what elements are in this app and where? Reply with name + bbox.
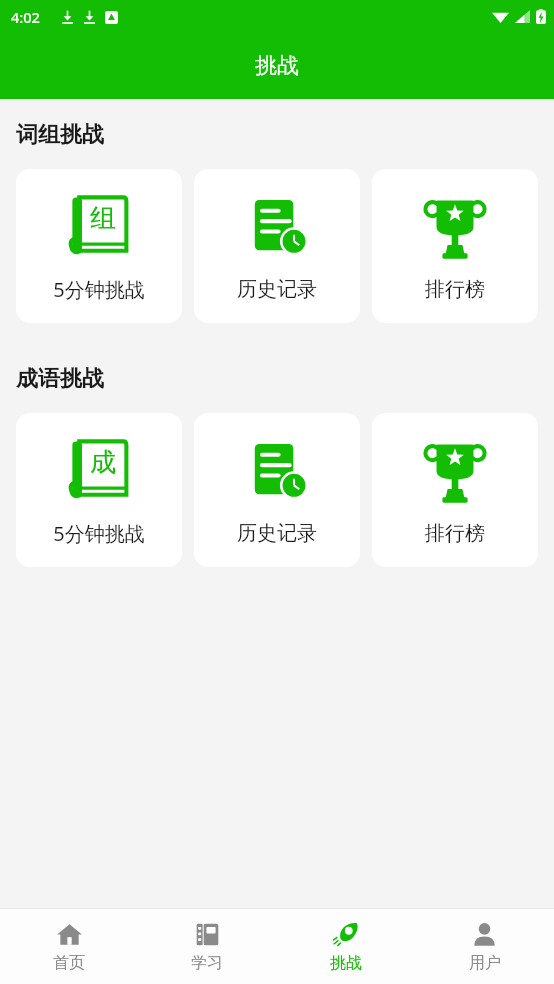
- staticText: 词组挑战: [16, 121, 104, 149]
- button[interactable]: 学习: [138, 909, 276, 984]
- staticText: 排行榜: [425, 521, 485, 546]
- button[interactable]: 历史记录: [194, 169, 360, 323]
- button[interactable]: 用户: [415, 909, 554, 984]
- button[interactable]: 首页: [0, 909, 138, 984]
- staticText: 挑战: [255, 52, 299, 80]
- other: 首页: [56, 921, 83, 948]
- other: 用户: [471, 921, 498, 948]
- button[interactable]: 历史记录: [194, 413, 360, 567]
- staticText: 排行榜: [425, 277, 485, 302]
- staticText: 历史记录: [237, 521, 317, 546]
- staticText: 4:02: [11, 7, 40, 27]
- staticText: 成语挑战: [16, 365, 104, 393]
- button[interactable]: 成: [16, 413, 182, 567]
- staticText: 组: [90, 202, 116, 235]
- other: 挑战: [332, 921, 359, 948]
- staticText: 挑战: [330, 953, 362, 973]
- staticText: 首页: [53, 953, 85, 973]
- staticText: 5分钟挑战: [53, 520, 145, 547]
- button[interactable]: 组: [16, 169, 182, 323]
- button[interactable]: 挑战: [276, 909, 415, 984]
- button[interactable]: 排行榜: [372, 169, 538, 323]
- staticText: 5分钟挑战: [53, 276, 145, 303]
- button[interactable]: 排行榜: [372, 413, 538, 567]
- staticText: 用户: [469, 953, 501, 973]
- staticText: 学习: [191, 953, 223, 973]
- staticText: 成: [90, 446, 116, 479]
- other: 学习: [194, 921, 221, 948]
- staticText: 历史记录: [237, 277, 317, 302]
